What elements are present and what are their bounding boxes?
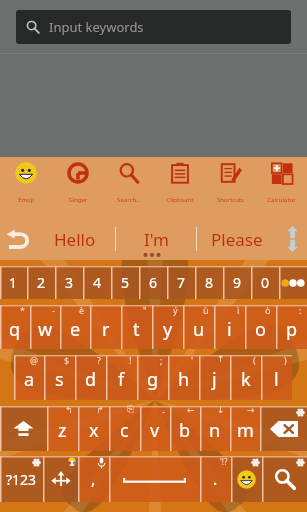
button[interactable]: $ [44,355,75,400]
button[interactable]: ↑ [199,355,230,400]
button[interactable]: Backspace [260,406,307,451]
button[interactable]: è [60,305,90,349]
button[interactable]: Ginger [52,157,103,218]
button[interactable]: Expand suggestions [277,218,307,260]
staticText: y [163,317,173,342]
staticText: n [209,418,221,443]
staticText: t [133,317,140,342]
staticText: ' [191,354,194,366]
staticText: 9 [233,273,242,292]
staticText: v [150,418,160,443]
staticText: 4 [93,273,102,292]
staticText: f [118,367,125,392]
staticText: Hello [54,228,96,251]
staticText: 7 [177,273,186,292]
button[interactable]: → [230,406,260,451]
button[interactable]: ⎘ [109,406,140,451]
button[interactable]: ; [137,355,168,400]
staticText: @ [30,354,39,366]
staticText: : [299,304,302,316]
button[interactable]: Hello [35,218,115,260]
button[interactable]: ò [245,305,276,349]
staticText: I'm [144,228,169,251]
button[interactable]: 6 [139,266,167,299]
button[interactable]: ( [230,355,261,400]
staticText: i [227,317,232,342]
button[interactable]: @ [14,355,44,400]
button[interactable]: ! [106,355,137,400]
staticText: 6 [149,273,158,292]
button[interactable]: Input keywords [16,10,291,44]
staticText: p [286,317,298,342]
staticText: * [20,304,25,316]
button[interactable]: Period [200,456,231,502]
staticText: h [178,367,190,392]
staticText: x [89,418,99,443]
button[interactable]: 7 [167,266,195,299]
button[interactable]: More [279,266,307,299]
button[interactable]: Calculator [256,157,307,218]
staticText: ↱ [96,405,104,415]
button[interactable]: ← [170,406,200,451]
button[interactable]: ' [168,355,199,400]
staticText: 3 [65,273,74,292]
staticText: Calculator [267,196,296,204]
staticText: o [255,317,266,342]
staticText: è [79,304,85,316]
button[interactable]: Shift [0,406,47,451]
staticText: ù [203,304,209,316]
button[interactable]: Undo [0,218,35,260]
staticText: '!? [220,456,228,467]
button[interactable]: r [90,305,121,349]
button[interactable]: Space [109,456,200,502]
button[interactable]: 4 [83,266,111,299]
button[interactable]: ↰ [47,406,78,451]
staticText: ! [129,354,132,366]
button[interactable]: Please [197,218,277,260]
button[interactable]: 0 [251,266,279,299]
button[interactable]: I'm [116,218,196,260]
button[interactable]: 3 [55,266,83,299]
button[interactable]: - [30,305,60,349]
button[interactable]: ) [261,355,292,400]
button[interactable]: Shortcuts [205,157,256,218]
button[interactable]: Emoji [231,456,262,502]
button[interactable]: * [0,305,30,349]
button[interactable]: ù [183,305,214,349]
button[interactable]: ý [152,305,183,349]
staticText: Emoji [18,196,34,204]
button[interactable]: Comma [78,456,109,502]
button[interactable]: ↓ [200,406,230,451]
button[interactable]: 8 [195,266,223,299]
button[interactable]: 2 [27,266,55,299]
staticText: ?123 [6,470,37,489]
staticText: l [274,367,279,392]
button[interactable]: Clipboard [154,157,205,218]
button[interactable]: " [121,305,152,349]
staticText: Input keywords [49,18,144,36]
button[interactable]: ? [75,355,106,400]
staticText: ↰ [65,405,73,415]
staticText: , [91,468,96,490]
staticText: Search... [117,196,141,204]
staticText: m [237,418,254,443]
button[interactable]: Emoji [0,157,52,218]
button[interactable]: Move cursor [43,456,78,502]
button[interactable]: 9 [223,266,251,299]
button[interactable]: Search [262,456,307,502]
staticText: Please [211,228,263,251]
staticText: a [24,367,35,392]
staticText: ↑ [217,354,225,364]
button[interactable]: ì [214,305,245,349]
staticText: c [120,418,129,443]
button[interactable]: - [140,406,170,451]
button[interactable]: ↱ [78,406,109,451]
button[interactable]: ?123 [0,456,43,502]
staticText: ì [237,304,240,316]
staticText: - [52,304,55,316]
staticText: ò [265,304,271,316]
button[interactable]: 1 [0,266,27,299]
button[interactable]: Search... [103,157,154,218]
button[interactable]: 5 [111,266,139,299]
button[interactable]: : [276,305,307,349]
